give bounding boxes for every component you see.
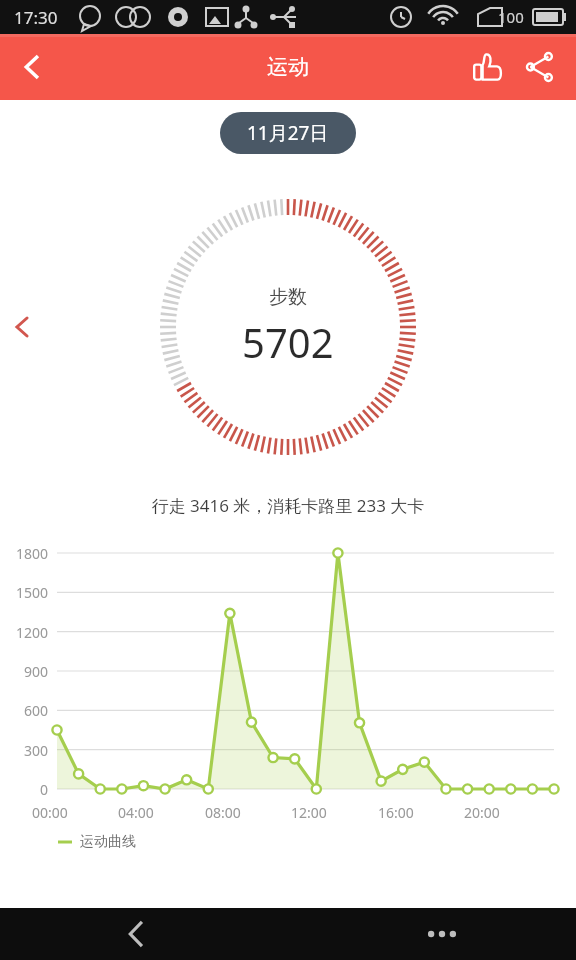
button[interactable]: 11月27日 <box>220 112 356 154</box>
staticText: 16:00 <box>378 803 414 822</box>
staticText: 运动曲线 <box>80 833 136 851</box>
staticText: 12:00 <box>291 803 327 822</box>
staticText: 1500 <box>2 583 48 602</box>
button[interactable]: Like <box>462 41 514 93</box>
button[interactable]: Previous day <box>0 305 44 349</box>
button[interactable]: Share <box>514 41 566 93</box>
staticText: 0 <box>2 780 48 799</box>
button[interactable]: More options <box>414 908 470 960</box>
staticText: 600 <box>2 701 48 720</box>
staticText: 行走 3416 米，消耗卡路里 233 大卡 <box>0 494 576 517</box>
staticText: 步数 <box>269 285 307 309</box>
button[interactable]: Back <box>108 908 164 960</box>
staticText: 08:00 <box>205 803 241 822</box>
staticText: 04:00 <box>118 803 154 822</box>
button[interactable]: Back <box>0 35 64 99</box>
staticText: 运动 <box>267 54 309 80</box>
staticText: 20:00 <box>464 803 500 822</box>
staticText: 5702 <box>242 315 334 369</box>
staticText: 900 <box>2 662 48 681</box>
staticText: 300 <box>2 741 48 760</box>
staticText: 1200 <box>2 623 48 642</box>
staticText: 11月27日 <box>247 120 329 146</box>
staticText: 00:00 <box>32 803 68 822</box>
staticText: 1800 <box>2 544 48 563</box>
staticText: 17:30 <box>14 6 58 29</box>
staticText: 100 <box>498 7 524 27</box>
